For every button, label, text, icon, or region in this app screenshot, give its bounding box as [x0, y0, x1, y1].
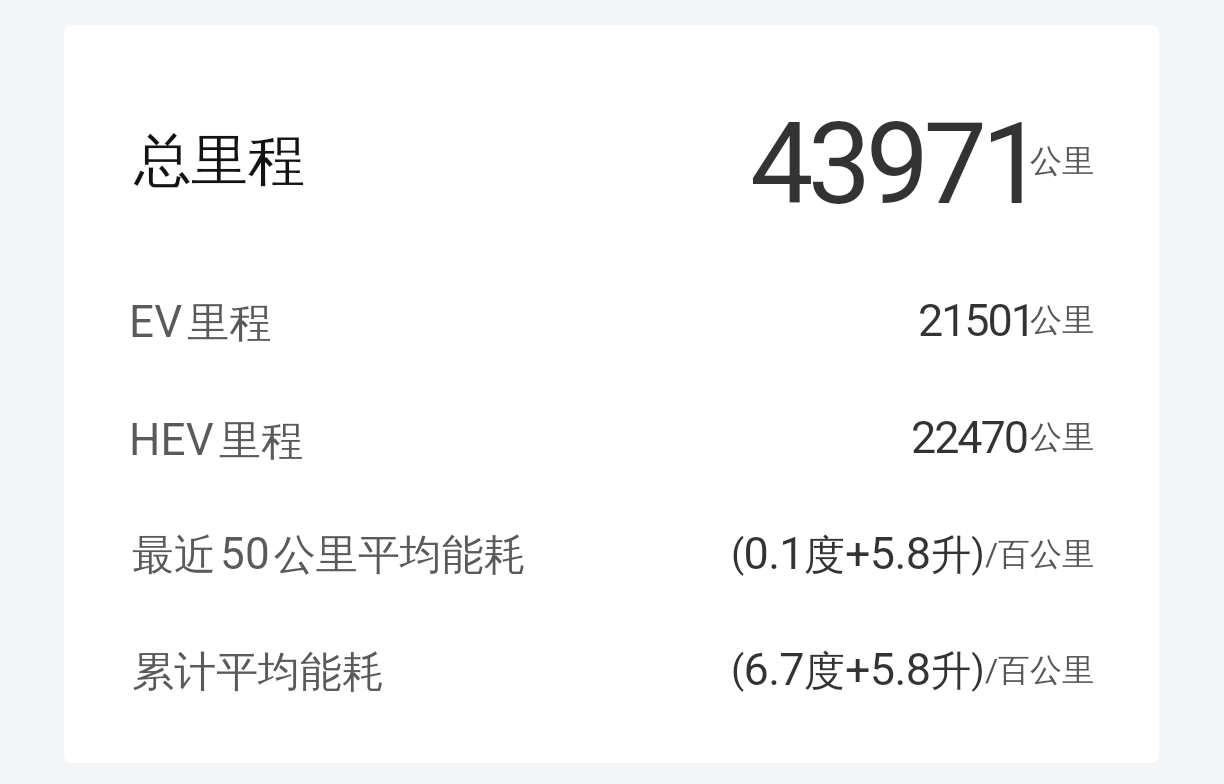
staticText: 公里: [1030, 300, 1094, 340]
button[interactable]: EV 里程: [64, 280, 1159, 350]
staticText: 22470: [911, 411, 1027, 464]
button[interactable]: 最近 50 公里平均能耗: [64, 512, 1159, 582]
staticText: 21501: [918, 294, 1034, 347]
staticText: 公里: [1030, 417, 1094, 457]
staticText: 最近 50 公里平均能耗: [132, 528, 526, 581]
staticText: /百公里: [985, 650, 1094, 690]
button[interactable]: 累计平均能耗: [64, 630, 1159, 700]
staticText: 43971: [750, 98, 1040, 220]
staticText: 公里: [1030, 141, 1094, 181]
staticText: 累计平均能耗: [132, 646, 384, 699]
button[interactable]: HEV 里程: [64, 398, 1159, 468]
staticText: /百公里: [985, 534, 1094, 574]
staticText: (0.1度+5.8升): [731, 527, 985, 581]
staticText: EV 里程: [129, 296, 272, 349]
staticText: HEV 里程: [129, 414, 303, 467]
staticText: (6.7度+5.8升): [731, 643, 985, 697]
staticText: 总里程: [134, 125, 305, 197]
button[interactable]: 总里程: [64, 92, 1159, 214]
